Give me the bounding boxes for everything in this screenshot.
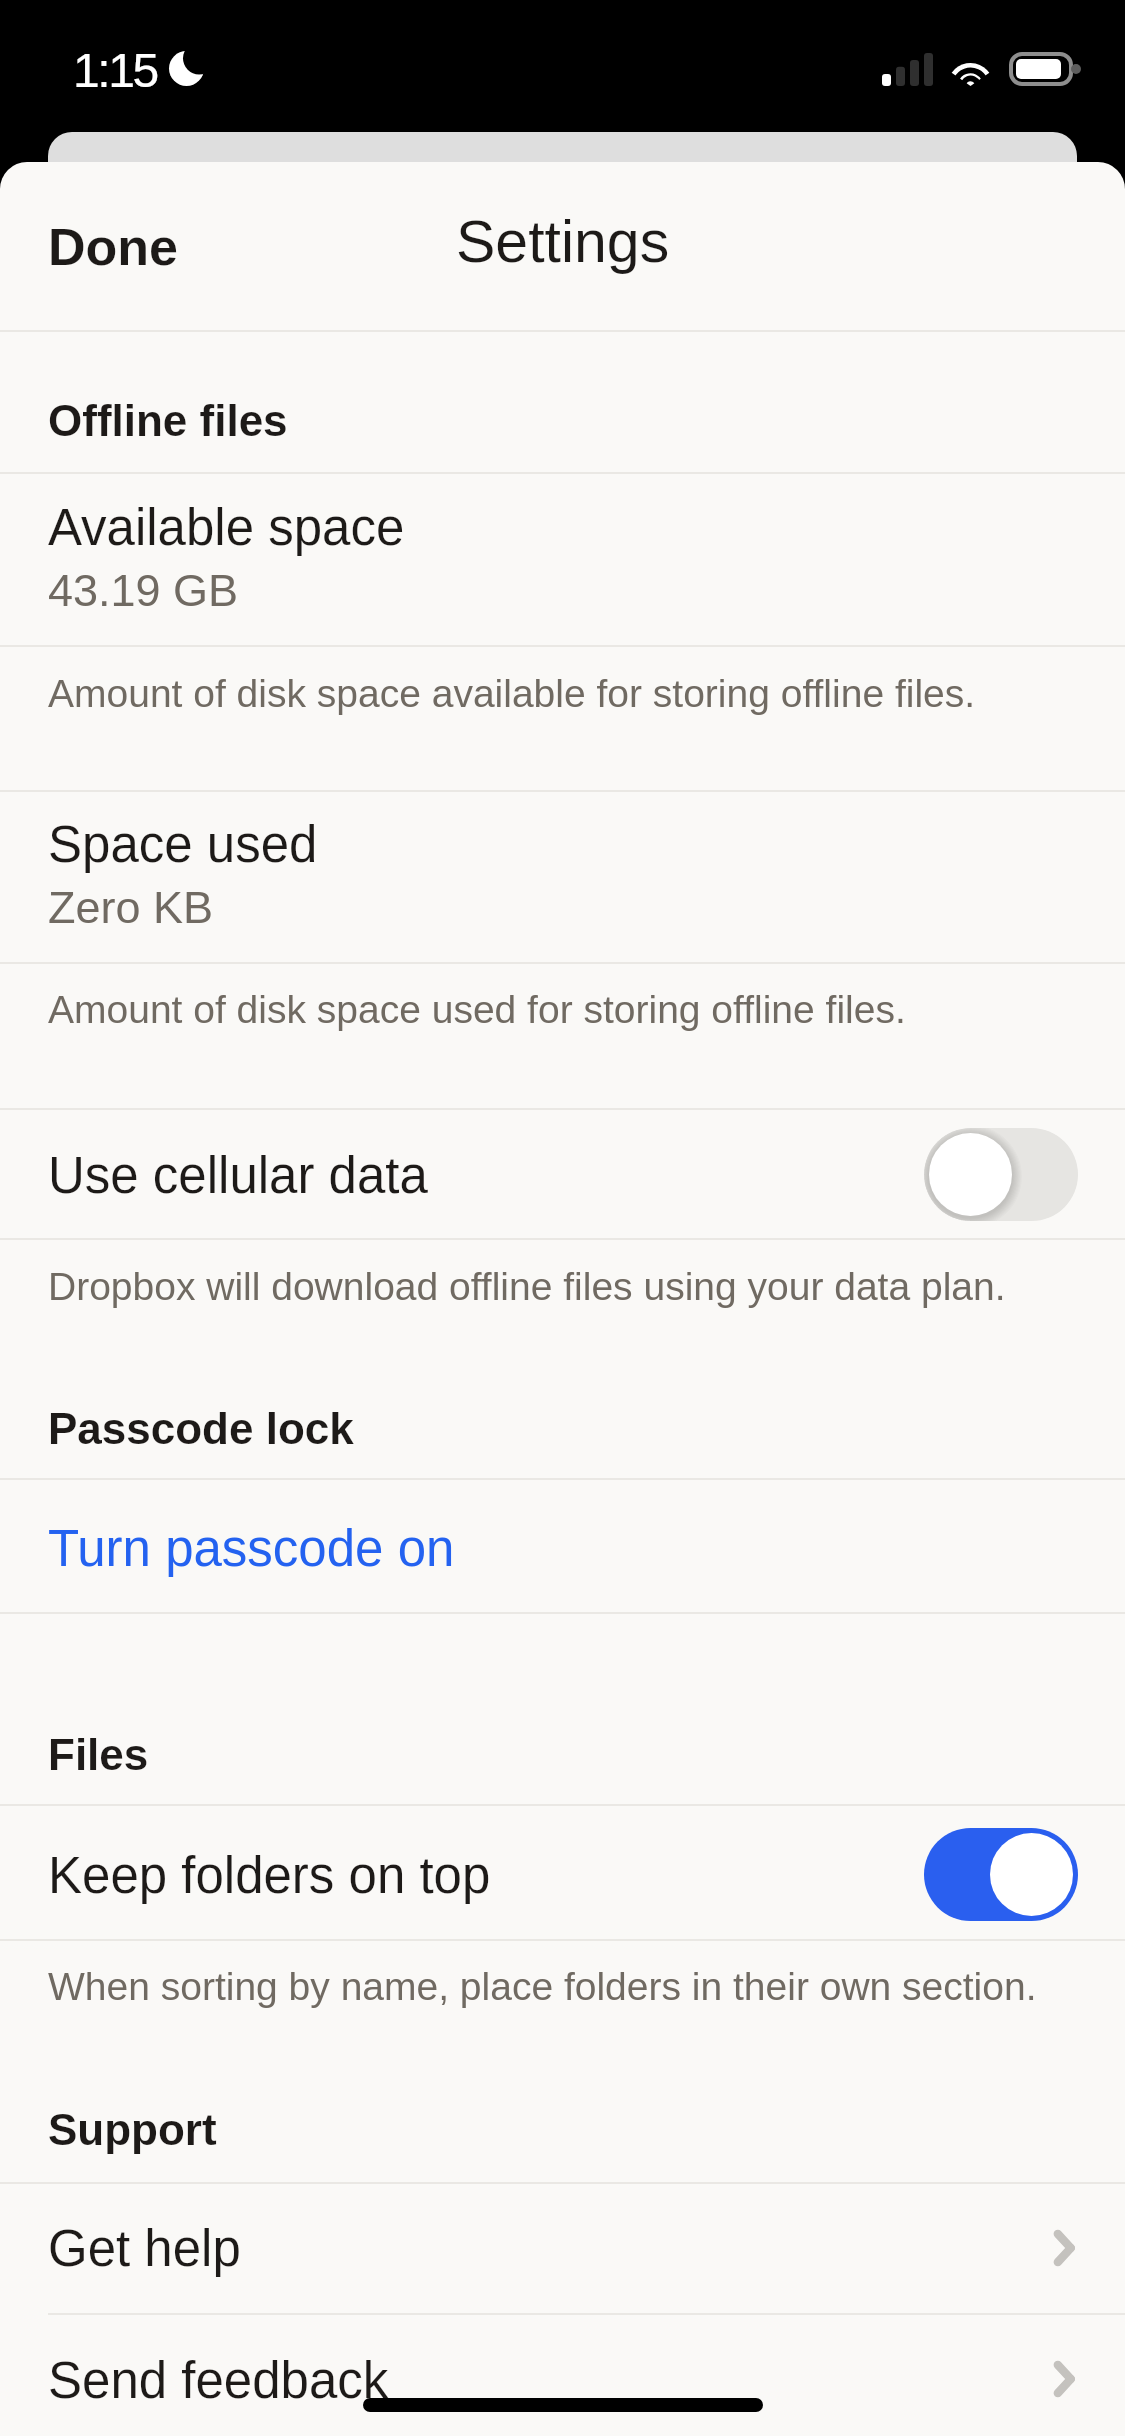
- button[interactable]: Use cellular data: [0, 1110, 1125, 1240]
- staticText: Use cellular data: [48, 1147, 428, 1204]
- staticText: Send feedback: [48, 2352, 389, 2409]
- staticText: Passcode lock: [48, 1404, 354, 1453]
- button[interactable]: Keep folders on top, on: [924, 1828, 1078, 1921]
- staticText: Space used: [48, 816, 318, 873]
- staticText: Dropbox will download offline files usin…: [48, 1265, 1006, 1309]
- button[interactable]: Send feedback: [0, 2315, 1125, 2436]
- staticText: Files: [48, 1730, 149, 1779]
- staticText: Amount of disk space available for stori…: [48, 672, 976, 716]
- button[interactable]: Done: [26, 194, 200, 300]
- staticText: Offline files: [48, 396, 288, 445]
- staticText: 43.19 GB: [48, 565, 239, 615]
- staticText: 1:15: [73, 44, 157, 98]
- staticText: Amount of disk space used for storing of…: [48, 988, 906, 1032]
- staticText: Support: [48, 2105, 217, 2154]
- button[interactable]: Use cellular data, off: [924, 1128, 1078, 1221]
- staticText: Settings: [456, 209, 670, 275]
- button[interactable]: Turn passcode on: [0, 1480, 1125, 1614]
- staticText: Zero KB: [48, 882, 214, 932]
- staticText: Done: [48, 218, 178, 276]
- button[interactable]: Keep folders on top: [0, 1806, 1125, 1941]
- staticText: Available space: [48, 499, 405, 556]
- staticText: When sorting by name, place folders in t…: [48, 1965, 1037, 2009]
- button[interactable]: Space used, Zero KB: [0, 792, 1125, 964]
- staticText: Turn passcode on: [48, 1520, 455, 1577]
- staticText: Keep folders on top: [48, 1847, 491, 1904]
- button[interactable]: Get help: [0, 2184, 1125, 2315]
- staticText: Get help: [48, 2220, 241, 2277]
- button[interactable]: Available space, 43.19 GB: [0, 474, 1125, 647]
